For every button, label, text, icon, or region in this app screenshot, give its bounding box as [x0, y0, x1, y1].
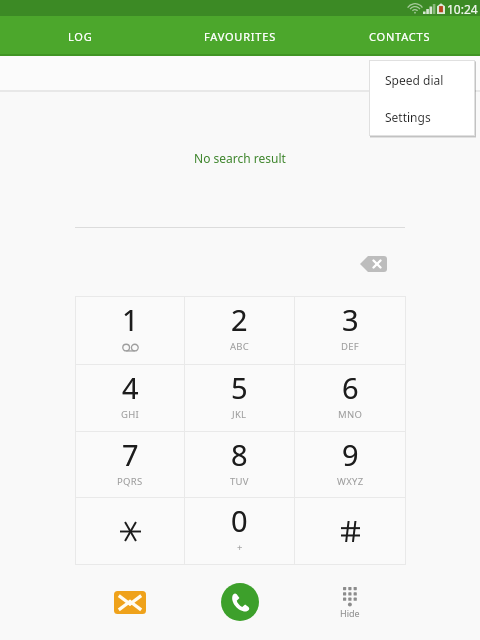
staticText: 8 [231, 435, 248, 474]
staticText: WXYZ [337, 475, 364, 488]
staticText: Hide [340, 607, 360, 619]
button[interactable]: 0 [185, 498, 294, 564]
button[interactable]: Settings [370, 98, 474, 135]
button[interactable]: Backspace [360, 256, 387, 272]
button[interactable]: 3 [295, 297, 405, 364]
staticText: LOG [68, 29, 93, 44]
staticText: 5 [231, 368, 248, 407]
staticText: 1 [122, 300, 139, 339]
staticText: 7 [122, 435, 139, 474]
staticText: 6 [342, 368, 359, 407]
staticText: + [237, 541, 243, 554]
button[interactable]: 1 [76, 297, 184, 364]
staticText: No search result [194, 150, 286, 166]
staticText: 3 [342, 300, 359, 339]
staticText: 10:24 [447, 1, 478, 17]
button[interactable]: FAVOURITES [160, 16, 320, 56]
button[interactable]: Speed dial [370, 61, 474, 98]
staticText: ABC [230, 340, 250, 353]
button[interactable]: Message [104, 576, 156, 628]
button[interactable]: 7 [76, 432, 184, 497]
staticText: GHI [121, 408, 140, 421]
staticText: TUV [230, 475, 249, 488]
staticText: 9 [342, 435, 359, 474]
staticText: JKL [232, 408, 247, 421]
staticText: 2 [231, 300, 248, 339]
staticText: DEF [341, 340, 360, 353]
button[interactable] [76, 498, 184, 564]
staticText: CONTACTS [369, 29, 431, 44]
button[interactable]: CONTACTS [320, 16, 480, 56]
staticText: Settings [385, 109, 431, 125]
staticText: 7 [122, 435, 139, 474]
staticText: PQRS [117, 475, 143, 488]
button[interactable]: 4 [76, 365, 184, 431]
button[interactable]: 9 [295, 432, 405, 497]
staticText: Speed dial [385, 72, 444, 88]
staticText: 0 [231, 501, 248, 540]
staticText: 0 [231, 501, 248, 540]
staticText: 3 [342, 300, 359, 339]
button[interactable]: LOG [0, 16, 160, 56]
button[interactable]: 6 [295, 365, 405, 431]
button[interactable]: 5 [185, 365, 294, 431]
staticText: 2 [231, 300, 248, 339]
button[interactable]: Call [214, 576, 266, 628]
button[interactable]: Hide keypad [324, 578, 376, 630]
staticText: 6 [342, 368, 359, 407]
staticText: 4 [122, 368, 139, 407]
button[interactable]: 8 [185, 432, 294, 497]
staticText: FAVOURITES [204, 29, 277, 44]
button[interactable] [295, 498, 405, 564]
staticText: 1 [122, 300, 139, 339]
staticText: 4 [122, 368, 139, 407]
button[interactable]: 2 [185, 297, 294, 364]
staticText: MNO [338, 408, 363, 421]
staticText: 9 [342, 435, 359, 474]
staticText: 8 [231, 435, 248, 474]
staticText: 5 [231, 368, 248, 407]
